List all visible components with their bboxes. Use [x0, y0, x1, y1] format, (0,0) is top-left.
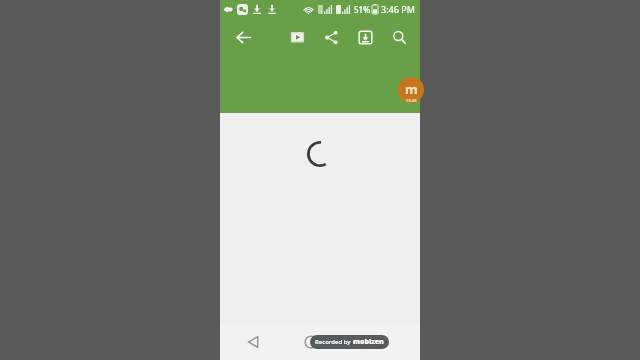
staticText: 3:46 PM [381, 3, 415, 15]
button[interactable]: Cast to TV [282, 22, 312, 52]
staticText: Recorded by [315, 338, 353, 346]
button[interactable]: Search [384, 22, 414, 52]
staticText: m [405, 80, 418, 98]
button[interactable]: Back [238, 327, 268, 357]
staticText: 51% [354, 4, 370, 15]
button[interactable]: Home [296, 327, 326, 357]
staticText: 00:48 [406, 98, 417, 103]
button[interactable]: Back [228, 22, 258, 52]
staticText: mobizen [353, 337, 384, 347]
button[interactable]: Share [316, 22, 346, 52]
button[interactable]: Download [350, 22, 380, 52]
button[interactable]: Recents [342, 327, 372, 357]
